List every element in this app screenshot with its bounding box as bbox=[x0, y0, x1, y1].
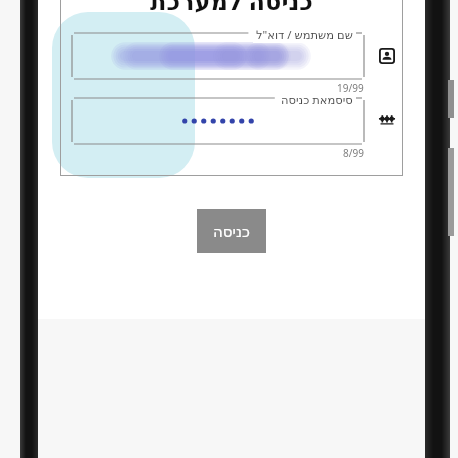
button[interactable]: כניסה bbox=[197, 209, 266, 253]
button[interactable] bbox=[72, 33, 364, 79]
staticText: 8/99 bbox=[343, 146, 364, 160]
staticText: 19/99 bbox=[337, 81, 364, 95]
staticText: כניסה bbox=[213, 223, 250, 240]
staticText: סיסמאת כניסה bbox=[281, 92, 353, 108]
staticText: שם משתמש / דוא"ל bbox=[256, 27, 353, 43]
button[interactable]: Show password bbox=[374, 108, 400, 134]
button[interactable]: Choose account bbox=[374, 43, 400, 69]
staticText: כניסה למערכת bbox=[150, 0, 313, 17]
button[interactable] bbox=[72, 98, 364, 144]
